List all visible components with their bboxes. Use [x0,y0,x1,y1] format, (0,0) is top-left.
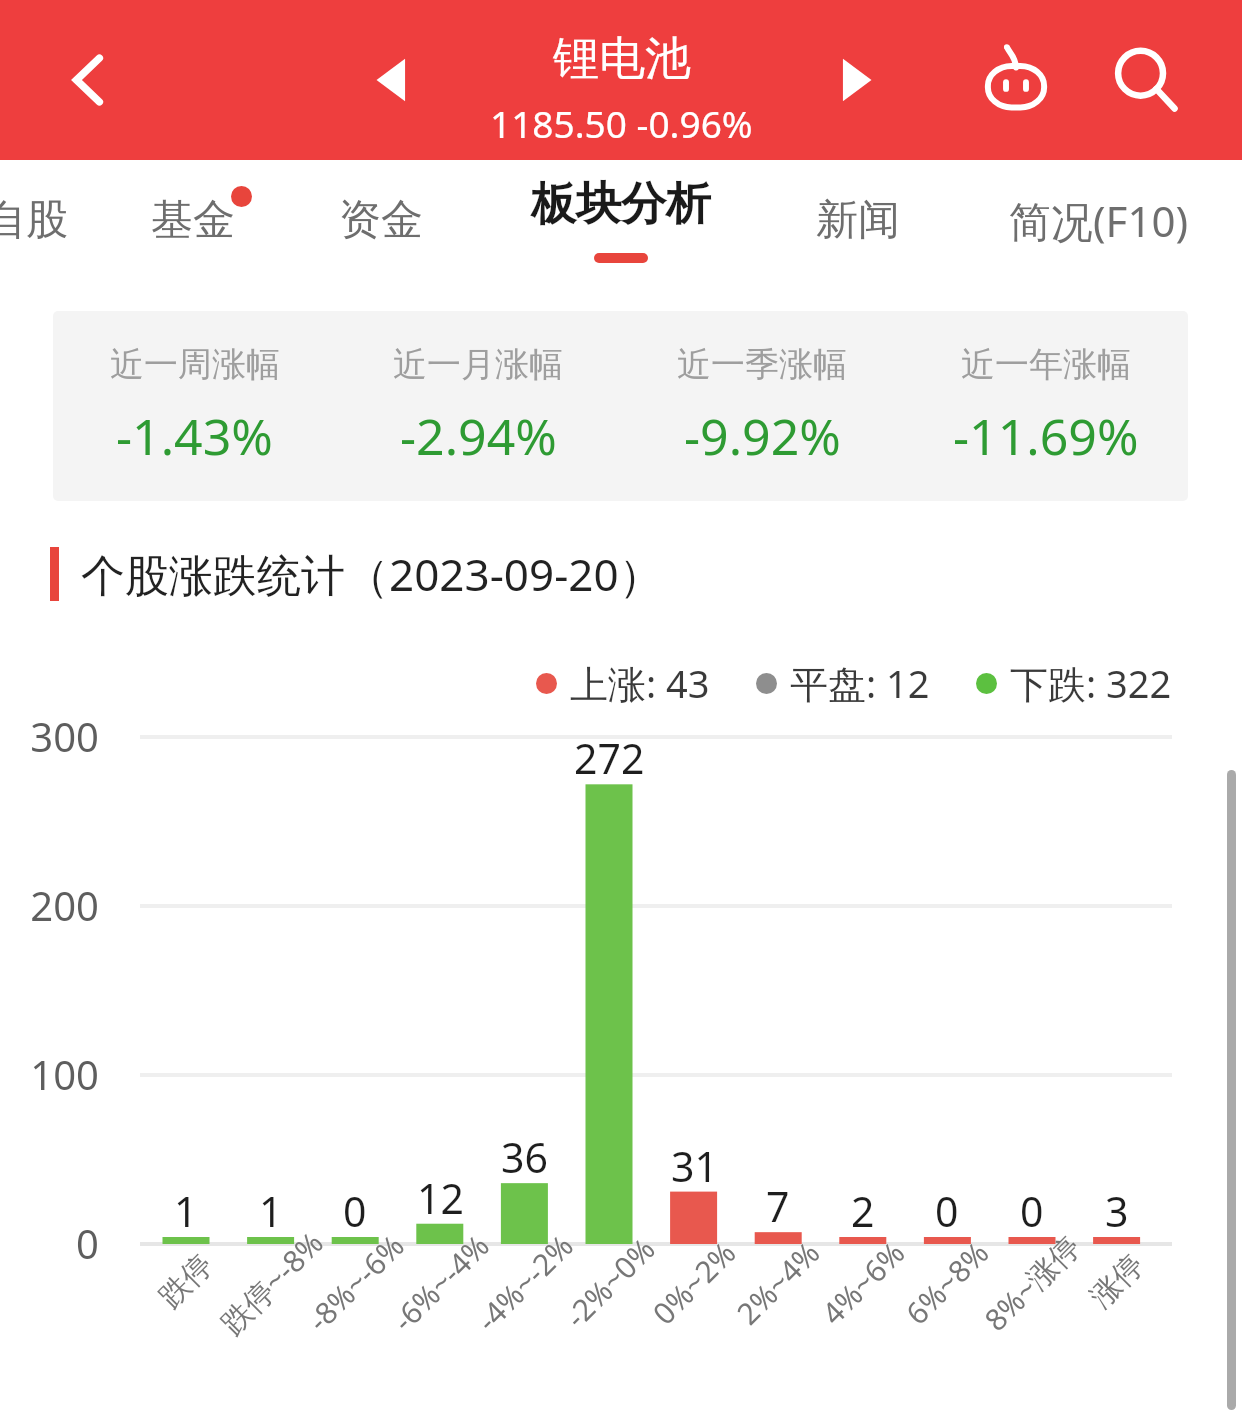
staticText: 上涨: 43 [570,657,710,709]
button[interactable]: 基金 [128,170,258,270]
staticText: 2%~4% [727,1232,828,1333]
staticText: 0 [343,1183,367,1239]
staticText: 跌停 [151,1246,221,1316]
staticText: 200 [30,878,99,932]
button[interactable]: 自股 [0,170,86,270]
staticText: 6%~8% [896,1232,997,1333]
staticText: 3 [1105,1183,1129,1239]
staticText: 1 [259,1183,283,1239]
button[interactable]: 下跌: 322 [976,657,1172,709]
staticText: 36 [501,1129,548,1185]
staticText: 近一季涨幅 [677,343,847,386]
staticText: 近一周涨幅 [110,343,280,386]
button[interactable]: 新闻 [793,170,923,270]
staticText: 4%~6% [812,1232,913,1333]
staticText: 272 [574,730,645,786]
button[interactable]: AI assistant [968,32,1064,128]
staticText: 近一月涨幅 [393,343,563,386]
button[interactable]: 简况(F10) [982,170,1216,270]
button[interactable]: 近一年涨幅 [904,311,1188,501]
staticText: -11.69% [953,402,1139,470]
staticText: 板块分析 [531,176,711,233]
staticText: 100 [30,1047,99,1101]
staticText: 个股涨跌统计（2023-09-20） [81,544,663,604]
button[interactable]: Previous sector [352,38,436,122]
staticText: 0 [1020,1183,1044,1239]
staticText: 12 [417,1170,464,1226]
staticText: 0 [935,1183,959,1239]
staticText: -9.92% [684,402,841,470]
staticText: -4%~-2% [467,1225,582,1340]
button[interactable]: Next sector [812,38,896,122]
staticText: 简况(F10) [1009,192,1189,249]
button[interactable]: 资金 [316,170,446,270]
staticText: -2%~0% [556,1229,663,1336]
staticText: 1185.50 -0.96% [490,98,753,148]
staticText: 1 [174,1183,198,1239]
button[interactable]: 近一季涨幅 [620,311,904,501]
button[interactable]: Back [48,38,132,122]
staticText: -6%~-4% [383,1225,498,1340]
staticText: 31 [671,1138,718,1194]
staticText: 近一年涨幅 [961,343,1131,386]
staticText: -2.94% [400,402,557,470]
staticText: 资金 [339,194,423,247]
staticText: 7 [766,1178,790,1234]
staticText: 2 [851,1183,875,1239]
staticText: 8%~涨停 [975,1226,1089,1339]
staticText: 300 [30,709,99,763]
staticText: 下跌: 322 [1010,657,1172,709]
button[interactable]: 板块分析 [508,162,734,302]
button[interactable]: 近一月涨幅 [336,311,620,501]
button[interactable]: Search [1098,32,1194,128]
staticText: 涨停 [1082,1246,1152,1316]
staticText: 平盘: 12 [790,657,930,709]
staticText: 自股 [0,194,68,247]
staticText: 基金 [151,194,235,247]
button[interactable]: 平盘: 12 [756,657,930,709]
staticText: 新闻 [816,194,900,247]
staticText: 0%~2% [643,1232,744,1333]
staticText: 0 [76,1216,99,1270]
staticText: 跌停~-8% [211,1222,332,1343]
button[interactable]: 近一周涨幅 [53,311,336,501]
staticText: -8%~-6% [298,1225,413,1340]
staticText: -1.43% [116,402,273,470]
button[interactable]: 上涨: 43 [536,657,710,709]
staticText: 锂电池 [553,30,691,88]
